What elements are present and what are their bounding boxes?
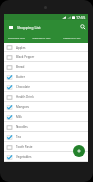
staticText: Black Pepper: [16, 55, 35, 59]
staticText: Milk: [16, 115, 22, 119]
button[interactable]: Bread: [4, 62, 88, 72]
staticText: Vegetables: [16, 155, 32, 159]
button[interactable]: FAVORITE LIST: [5, 37, 28, 40]
staticText: Tea: [16, 135, 21, 139]
button[interactable]: Black Pepper: [4, 52, 88, 62]
button[interactable]: Chocolate: [4, 82, 88, 92]
button[interactable]: PRODUCT LIST: [55, 37, 88, 40]
button[interactable]: Apples: [4, 43, 88, 52]
button[interactable]: Health Drink: [4, 92, 88, 102]
staticText: Mangoes: [16, 105, 30, 109]
staticText: Shopping List: [17, 25, 41, 30]
staticText: Chocolate: [16, 85, 31, 89]
button[interactable]: SHOPPING LIST: [28, 37, 55, 40]
button[interactable]: Vegetables: [4, 152, 88, 162]
staticText: Tooth Paste: [16, 145, 33, 149]
staticText: Noodles: [16, 125, 28, 129]
staticText: Health Drink: [16, 95, 34, 99]
button[interactable]: Milk: [4, 112, 88, 122]
button[interactable]: Menu: [6, 22, 16, 32]
staticText: Bread: [16, 65, 25, 69]
button[interactable]: Noodles: [4, 122, 88, 132]
staticText: FAVORITE LIST: [8, 37, 25, 40]
staticText: SHOPPING LIST: [32, 37, 51, 40]
button[interactable]: Butter: [4, 72, 88, 82]
staticText: 17:55: [76, 15, 86, 20]
button[interactable]: Tea: [4, 132, 88, 142]
button[interactable]: Tooth Paste: [4, 142, 88, 152]
staticText: Apples: [16, 46, 26, 50]
button[interactable]: Mangoes: [4, 102, 88, 112]
button[interactable]: Add item: [73, 145, 85, 157]
staticText: Butter: [16, 75, 25, 79]
staticText: PRODUCT LIST: [63, 37, 81, 40]
button[interactable]: Search: [78, 22, 88, 32]
